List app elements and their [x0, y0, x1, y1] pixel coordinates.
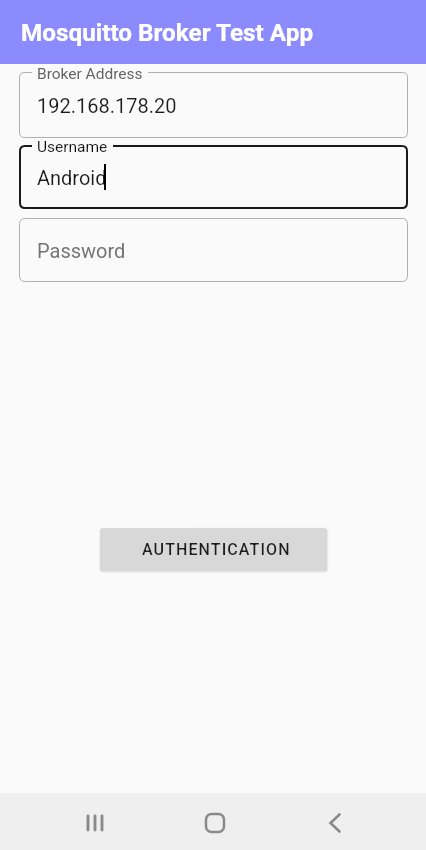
button[interactable]: Password — [19, 218, 408, 282]
staticText: Android — [37, 166, 107, 189]
staticText: Password — [37, 239, 126, 262]
button[interactable]: Username — [19, 145, 408, 209]
staticText: AUTHENTICATION — [142, 540, 291, 559]
button[interactable]: Home — [155, 794, 275, 850]
button[interactable]: Recent apps — [35, 794, 155, 850]
staticText: Username — [37, 138, 108, 156]
button[interactable]: AUTHENTICATION — [100, 528, 327, 571]
staticText: Mosquitto Broker Test App — [21, 18, 314, 46]
button[interactable]: Broker Address — [19, 72, 408, 138]
staticText: 192.168.178.20 — [37, 94, 177, 117]
staticText: Broker Address — [37, 65, 143, 83]
button[interactable]: Back — [275, 794, 395, 850]
